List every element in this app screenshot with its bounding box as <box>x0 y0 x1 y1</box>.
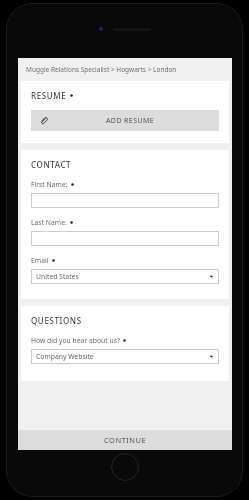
staticText: CONTINUE <box>104 435 147 445</box>
staticText: Company Website <box>36 352 209 361</box>
staticText: First Name: <box>31 180 68 189</box>
staticText: QUESTIONS <box>31 315 82 326</box>
staticText: ADD RESUME <box>106 116 154 126</box>
staticText: Muggle Relations Specialist > Hogwarts >… <box>26 65 177 74</box>
staticText: Email <box>31 256 49 265</box>
button[interactable]: United States <box>31 269 219 284</box>
staticText: CONTACT <box>31 159 72 170</box>
other: Open dropdown <box>209 274 214 279</box>
staticText: United States <box>36 272 209 281</box>
other: Open dropdown <box>209 354 214 359</box>
button[interactable]: Attach file <box>31 110 219 131</box>
staticText: Last Name: <box>31 218 67 227</box>
staticText: How did you hear about us? <box>31 336 120 345</box>
button[interactable]: Company Website <box>31 349 219 364</box>
staticText: RESUME <box>31 90 67 101</box>
button[interactable]: Home <box>111 453 139 481</box>
button[interactable]: Muggle Relations Specialist > Hogwarts >… <box>18 58 232 81</box>
button[interactable] <box>31 231 219 246</box>
other: Attach file <box>39 116 48 125</box>
button[interactable]: CONTINUE <box>18 430 232 450</box>
button[interactable] <box>31 193 219 208</box>
